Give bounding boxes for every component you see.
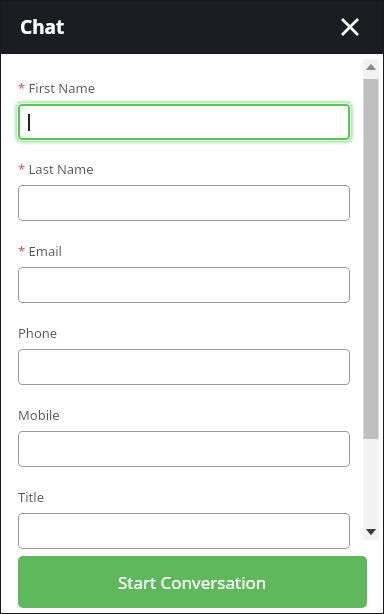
button[interactable]: Close chat (334, 11, 366, 43)
staticText: Start Conversation (118, 571, 267, 594)
staticText: Title (18, 488, 44, 506)
staticText: * Last Name (18, 160, 94, 178)
button[interactable]: First Name (18, 104, 350, 140)
button[interactable]: Last Name (18, 185, 350, 221)
staticText: Phone (18, 324, 58, 342)
button[interactable]: Mobile (18, 431, 350, 467)
button[interactable]: Start Conversation (18, 556, 367, 608)
staticText: Mobile (18, 406, 60, 424)
staticText: * First Name (18, 79, 95, 97)
button[interactable]: Phone (18, 349, 350, 385)
staticText: * Email (18, 242, 62, 260)
button[interactable]: Email (18, 267, 350, 303)
button[interactable]: Title (18, 513, 350, 549)
staticText: Chat (20, 14, 65, 40)
